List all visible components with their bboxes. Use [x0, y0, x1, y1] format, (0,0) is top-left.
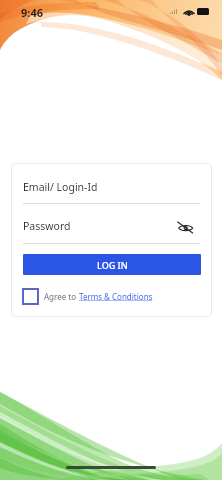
staticText: Password: [23, 219, 71, 233]
staticText: 9:46: [21, 5, 43, 20]
button[interactable]: Agree to: [44, 291, 153, 302]
button[interactable]: Password: [11, 208, 212, 244]
button[interactable]: Agree to terms checkbox: [22, 288, 39, 305]
staticText: Email/ Login-Id: [23, 180, 98, 194]
button[interactable]: Email/ Login-Id: [11, 169, 212, 205]
staticText: Agree to: [44, 291, 79, 302]
staticText: Terms & Conditions: [79, 291, 153, 302]
button[interactable]: LOG IN: [23, 254, 201, 275]
button[interactable]: Show password: [173, 215, 195, 237]
staticText: LOG IN: [97, 259, 128, 271]
